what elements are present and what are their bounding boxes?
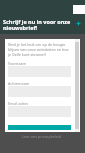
staticText: Vind je het leuk om op de hoogte blijven… xyxy=(8,42,72,57)
staticText: Achternaam xyxy=(8,81,30,86)
staticText: Voornaam xyxy=(8,61,26,66)
staticText: Schrijf je nu in voor onze nieuwsbrief! xyxy=(3,18,81,31)
other: Sparkle xyxy=(76,21,81,26)
staticText: Email adres xyxy=(8,101,29,106)
staticText: Lees ons privacybeleid xyxy=(22,134,61,139)
